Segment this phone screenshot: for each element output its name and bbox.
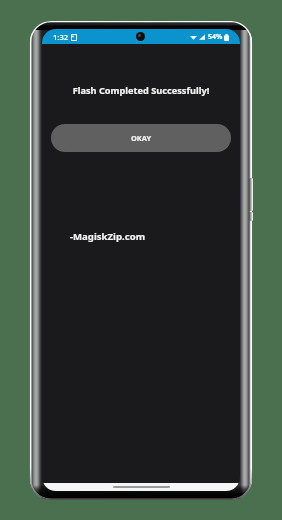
other: Volume and power buttons <box>249 176 253 222</box>
staticText: 54% <box>208 32 223 42</box>
staticText: -MagiskZip.com <box>70 230 146 243</box>
button[interactable]: OKAY <box>51 124 231 152</box>
staticText: Flash Completed Successfully! <box>42 84 240 97</box>
staticText: OKAY <box>131 133 152 143</box>
staticText: 1:32 <box>53 32 69 42</box>
